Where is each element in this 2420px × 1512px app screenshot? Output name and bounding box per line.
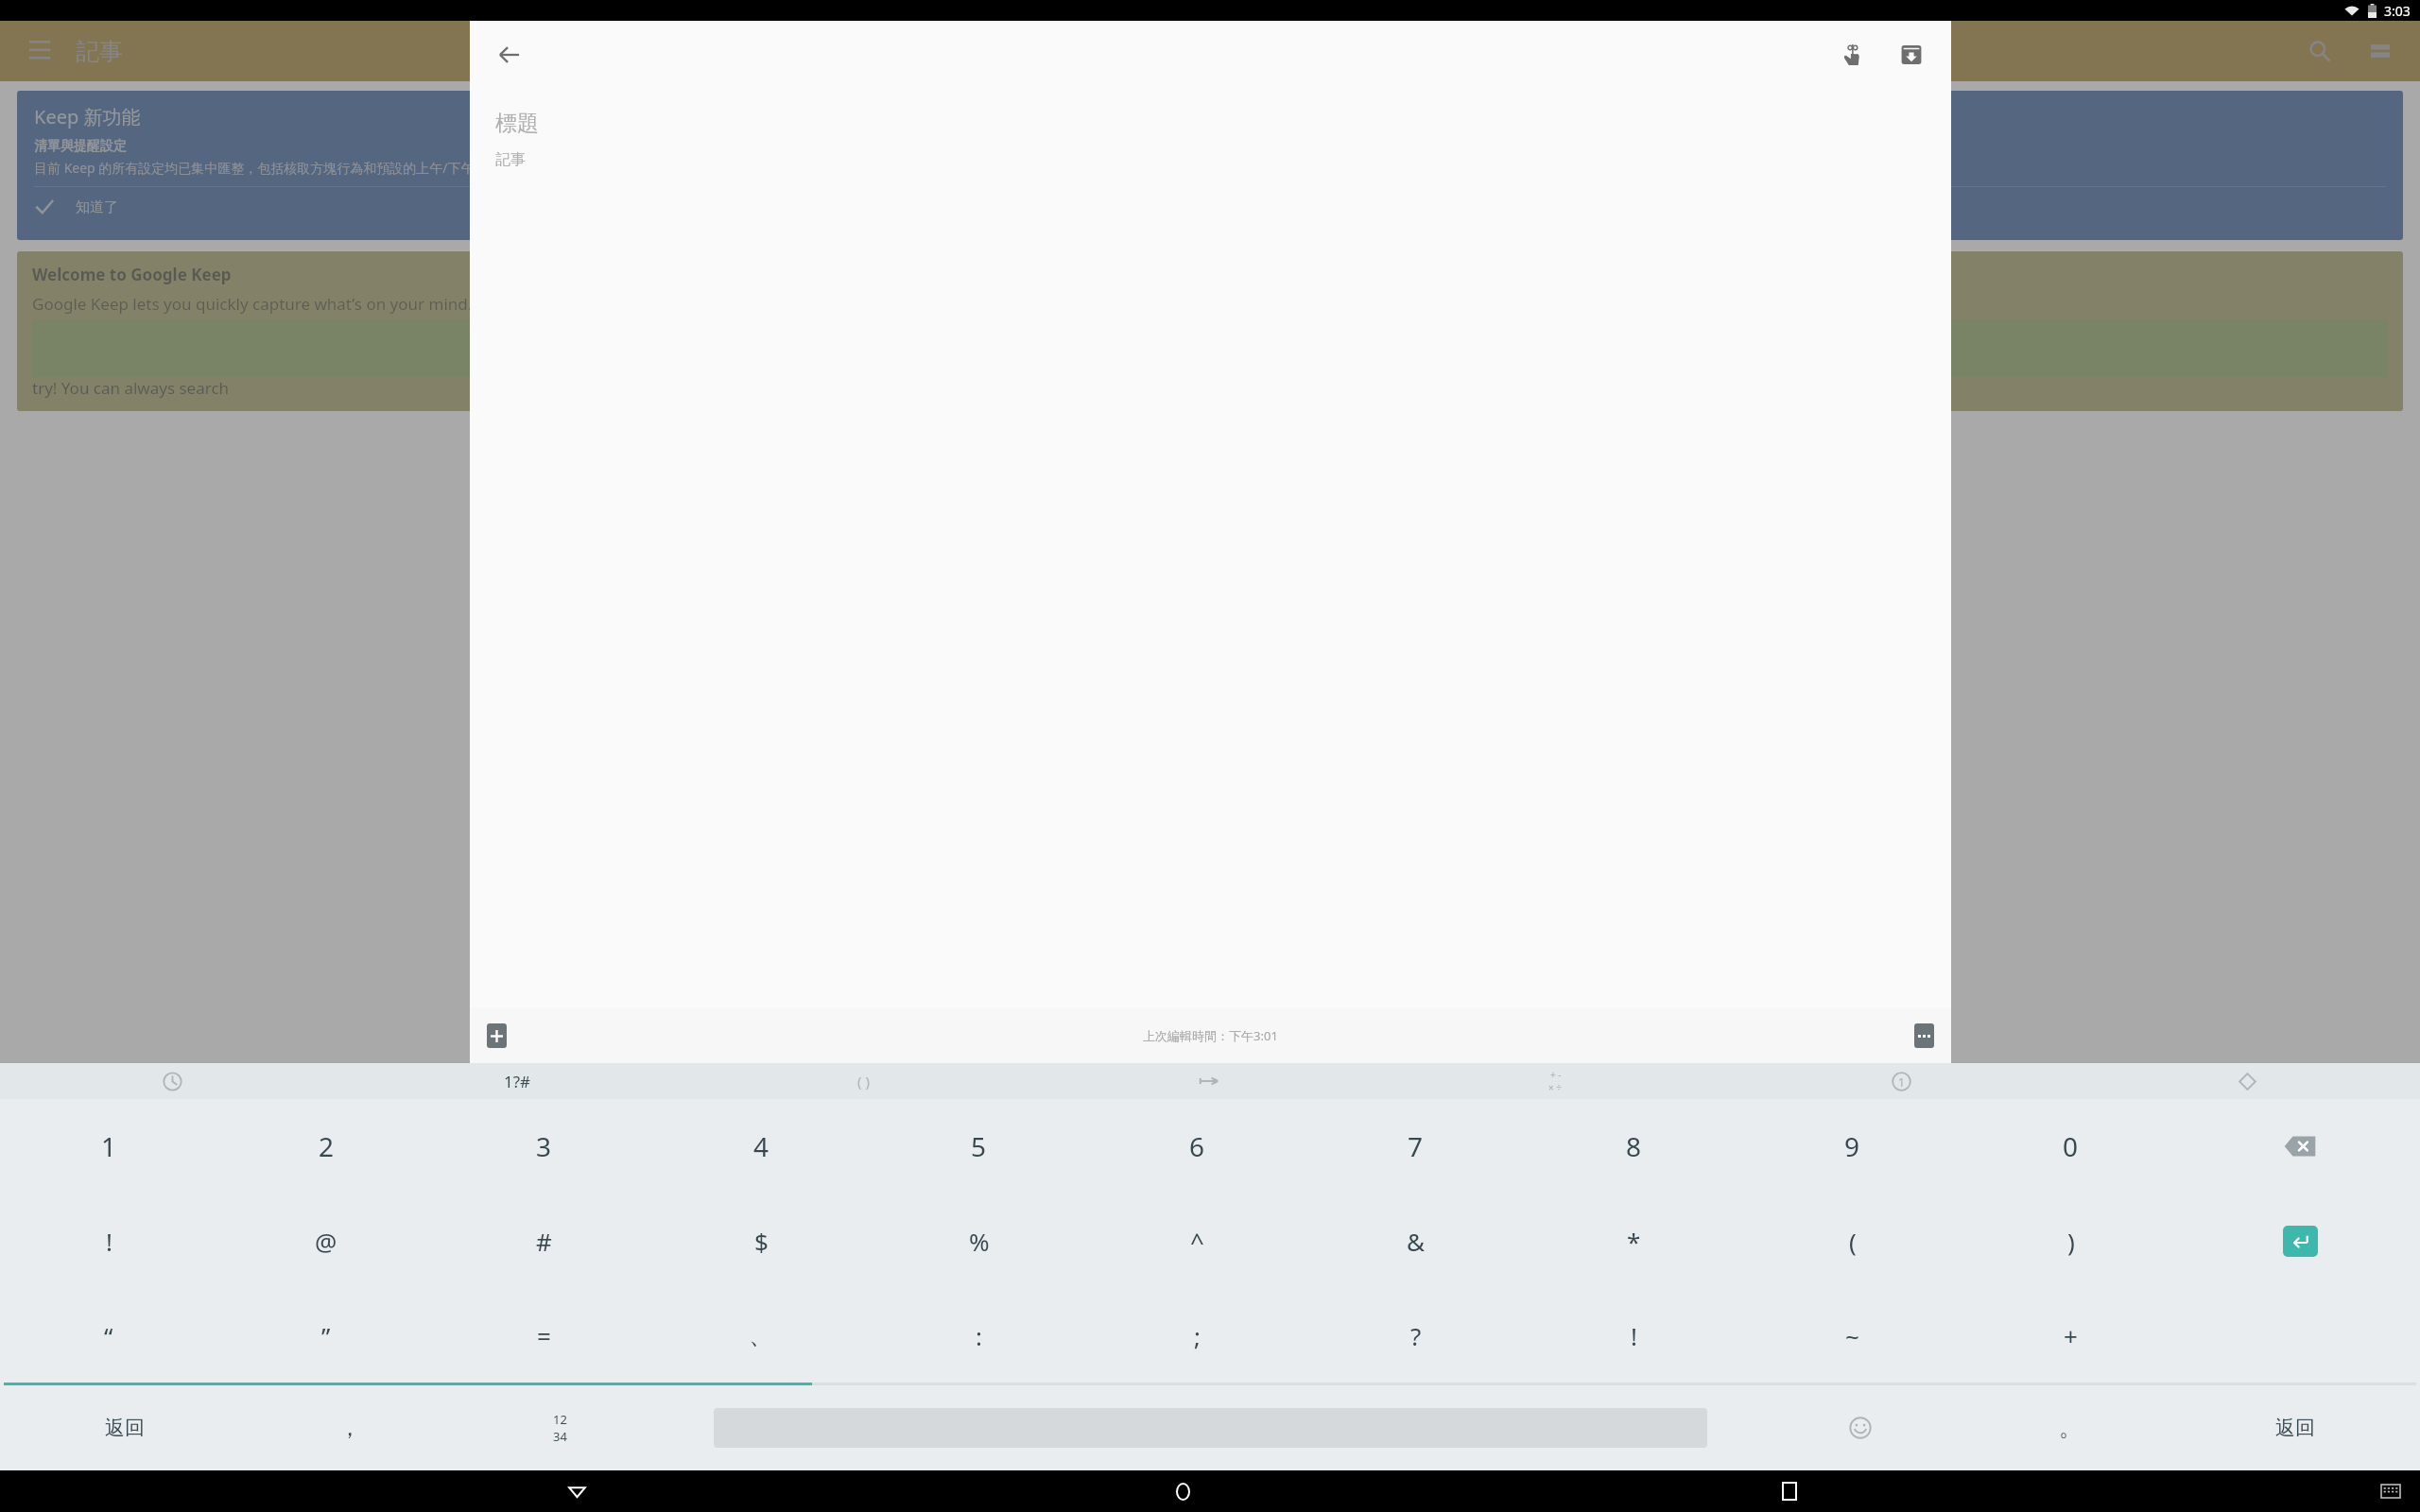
button[interactable]: 標題: [495, 110, 1926, 137]
button[interactable]: ~: [1743, 1288, 1962, 1383]
staticText: 0: [2063, 1128, 2079, 1164]
button[interactable]: 記事: [495, 150, 1926, 169]
button[interactable]: ?: [1306, 1288, 1525, 1383]
staticText: 5: [971, 1128, 987, 1164]
button[interactable]: 4: [652, 1099, 870, 1194]
button[interactable]: Arrows: [1036, 1063, 1382, 1099]
button[interactable]: #: [435, 1194, 652, 1288]
button[interactable]: !: [1525, 1288, 1743, 1383]
button[interactable]: Home: [1153, 1470, 1212, 1512]
staticText: 8: [1626, 1128, 1642, 1164]
button[interactable]: “: [0, 1288, 217, 1383]
button[interactable]: ( ): [690, 1063, 1036, 1099]
staticText: @: [315, 1225, 337, 1258]
staticText: “: [104, 1319, 113, 1352]
button[interactable]: :: [870, 1288, 1088, 1383]
staticText: ，: [338, 1414, 361, 1442]
button[interactable]: Enter: [2283, 1226, 2318, 1257]
staticText: 3: [536, 1128, 552, 1164]
button[interactable]: Open navigation drawer: [17, 28, 62, 74]
staticText: (: [1849, 1225, 1857, 1258]
button[interactable]: Backspace: [2180, 1099, 2420, 1194]
staticText: 9: [1844, 1128, 1860, 1164]
button[interactable]: !: [0, 1194, 217, 1288]
button[interactable]: Hide keyboard: [2367, 1470, 2414, 1512]
button[interactable]: Emoji: [1750, 1385, 1970, 1470]
staticText: 6: [1189, 1128, 1205, 1164]
staticText: ): [2067, 1225, 2075, 1258]
staticText: $: [754, 1225, 769, 1258]
button[interactable]: (: [1743, 1194, 1962, 1288]
button[interactable]: Search: [2297, 28, 2342, 74]
button[interactable]: @: [217, 1194, 435, 1288]
staticText: ?: [1410, 1319, 1422, 1352]
staticText: ( ): [857, 1072, 870, 1091]
button[interactable]: Welcome to Google Keep: [1219, 251, 2403, 411]
button[interactable]: More options: [1914, 1023, 1934, 1048]
button[interactable]: Space: [714, 1408, 1707, 1448]
button[interactable]: Recent: [0, 1063, 345, 1099]
button[interactable]: 6: [1088, 1099, 1306, 1194]
button[interactable]: Toggle view: [2358, 28, 2403, 74]
button[interactable]: 0: [1962, 1099, 2180, 1194]
button[interactable]: ，: [250, 1385, 450, 1470]
staticText: 上次編輯時間：下午3:01: [1143, 1027, 1278, 1044]
button[interactable]: 。: [1970, 1385, 2170, 1470]
button[interactable]: ”: [217, 1288, 435, 1383]
staticText: 3:03: [2384, 2, 2411, 20]
staticText: ~: [1845, 1319, 1859, 1352]
staticText: !: [106, 1225, 112, 1258]
button[interactable]: Recent apps: [1760, 1470, 1819, 1512]
button[interactable]: Archive: [1889, 32, 1934, 77]
other: Shapes: [2238, 1072, 2257, 1091]
staticText: 1: [1898, 1074, 1905, 1090]
button[interactable]: Shapes: [2074, 1063, 2420, 1099]
button[interactable]: Math symbols: [1382, 1063, 1728, 1099]
staticText: 返回: [105, 1416, 145, 1440]
button[interactable]: Pin note: [1830, 32, 1875, 77]
staticText: try! You can always search: [32, 377, 230, 399]
staticText: #: [536, 1225, 552, 1258]
button[interactable]: $: [652, 1194, 870, 1288]
button[interactable]: Keep 新功能: [1219, 91, 2403, 240]
button[interactable]: 5: [870, 1099, 1088, 1194]
button[interactable]: 7: [1306, 1099, 1525, 1194]
button[interactable]: Number layout: [450, 1385, 670, 1470]
staticText: ;: [1194, 1319, 1201, 1352]
staticText: =: [537, 1319, 551, 1352]
button[interactable]: Back: [487, 32, 532, 77]
button[interactable]: 9: [1743, 1099, 1962, 1194]
button[interactable]: Numbers: [1728, 1063, 2074, 1099]
button[interactable]: 知道了: [1236, 187, 2386, 227]
button[interactable]: 1?#: [345, 1063, 690, 1099]
button[interactable]: 返回: [0, 1385, 250, 1470]
button[interactable]: =: [435, 1288, 652, 1383]
button[interactable]: 1: [0, 1099, 217, 1194]
button[interactable]: &: [1306, 1194, 1525, 1288]
other: Numbers: [1892, 1072, 1911, 1091]
staticText: 4: [753, 1128, 769, 1164]
button[interactable]: ): [1962, 1194, 2180, 1288]
button[interactable]: %: [870, 1194, 1088, 1288]
button[interactable]: 8: [1525, 1099, 1743, 1194]
button[interactable]: Keep 新功能: [17, 91, 1201, 240]
staticText: &: [1407, 1225, 1426, 1258]
button[interactable]: 2: [217, 1099, 435, 1194]
button[interactable]: Back: [547, 1470, 606, 1512]
button[interactable]: ^: [1088, 1194, 1306, 1288]
button[interactable]: +: [1962, 1288, 2180, 1383]
button[interactable]: 3: [435, 1099, 652, 1194]
button[interactable]: Welcome to Google Keep: [17, 251, 1201, 411]
button[interactable]: *: [1525, 1194, 1743, 1288]
button[interactable]: ;: [1088, 1288, 1306, 1383]
staticText: 清單與提醒設定: [34, 138, 127, 155]
staticText: :: [976, 1319, 982, 1352]
staticText: 記事: [76, 37, 123, 66]
button[interactable]: Add: [487, 1023, 507, 1048]
button[interactable]: 知道了: [34, 187, 1184, 227]
staticText: 7: [1408, 1128, 1424, 1164]
button[interactable]: 返回: [2170, 1385, 2420, 1470]
